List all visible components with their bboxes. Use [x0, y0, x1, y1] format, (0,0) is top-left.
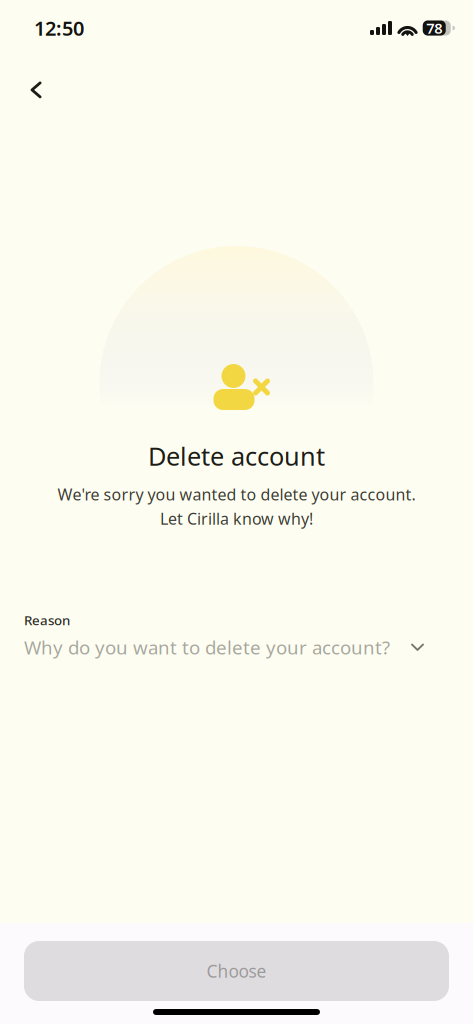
staticText: Why do you want to delete your account?: [24, 635, 390, 660]
button[interactable]: Choose: [24, 941, 449, 1001]
staticText: We're sorry you wanted to delete your ac…: [57, 484, 415, 505]
button[interactable]: Reason: [0, 611, 473, 660]
staticText: Delete account: [148, 439, 325, 473]
staticText: Reason: [24, 611, 70, 629]
staticText: 12:50: [34, 15, 84, 41]
button[interactable]: Back: [14, 68, 58, 112]
staticText: Let Cirilla know why!: [160, 508, 313, 529]
staticText: Choose: [206, 959, 266, 982]
staticText: 78: [426, 18, 442, 38]
